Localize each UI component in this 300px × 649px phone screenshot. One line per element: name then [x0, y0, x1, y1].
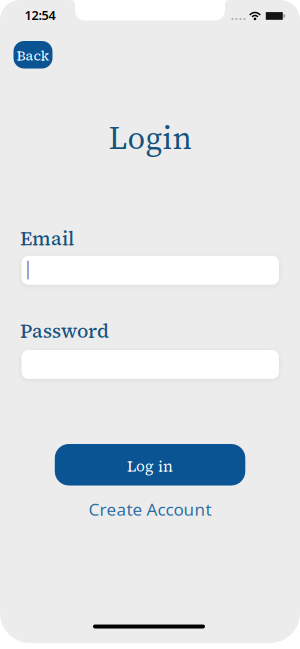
- button[interactable]: Log in: [55, 444, 245, 485]
- button[interactable]: Back: [13, 41, 52, 68]
- staticText: Login: [108, 115, 191, 160]
- staticText: Back: [16, 46, 49, 65]
- button[interactable]: Create Account: [0, 497, 300, 521]
- staticText: Email: [20, 225, 74, 252]
- staticText: Password: [20, 317, 109, 344]
- staticText: Log in: [127, 456, 173, 476]
- staticText: Create Account: [88, 497, 211, 521]
- staticText: 12:54: [24, 6, 55, 24]
